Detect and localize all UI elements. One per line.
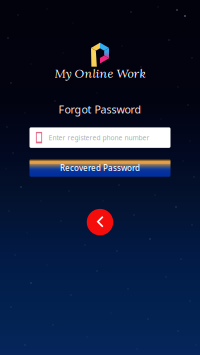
staticText: Forgot Password xyxy=(58,102,141,116)
staticText: My Online Work xyxy=(54,65,145,81)
staticText: Recovered Password xyxy=(60,163,140,173)
button[interactable]: Back xyxy=(87,209,113,235)
staticText: Enter registered phone number xyxy=(48,133,149,142)
button[interactable]: Recovered Password xyxy=(29,159,170,177)
